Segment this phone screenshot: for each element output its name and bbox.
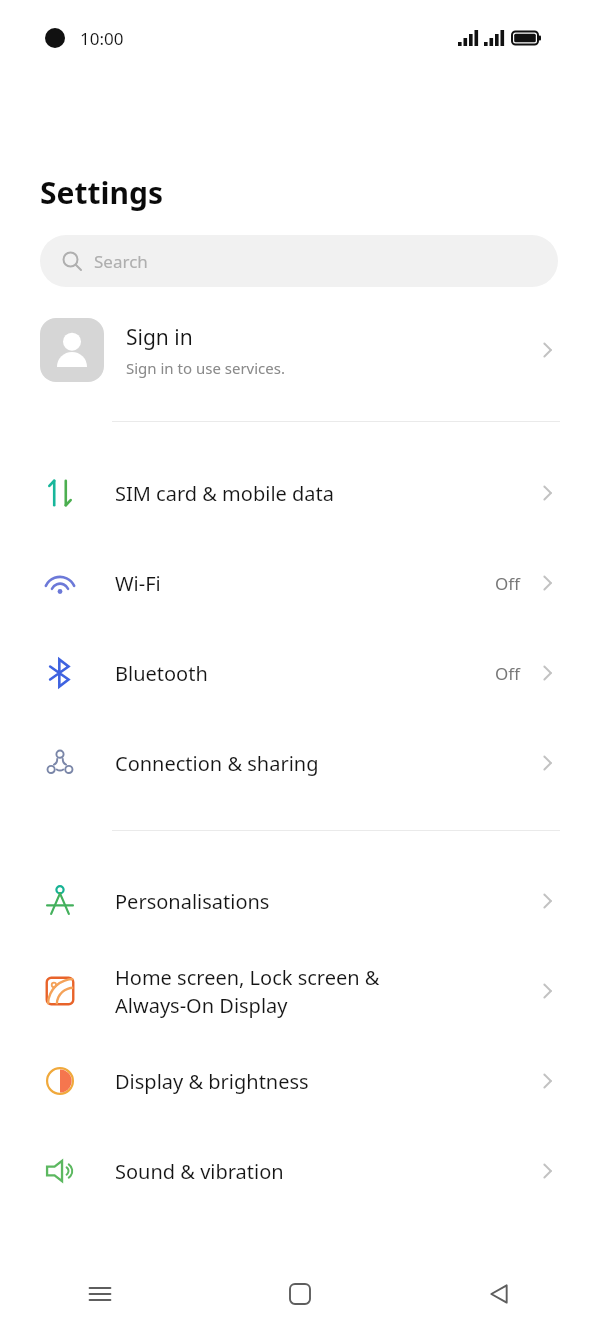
button[interactable]: Home — [200, 1258, 399, 1330]
staticText: Off — [495, 572, 520, 595]
staticText: Sign in to use services. — [126, 358, 285, 378]
button[interactable]: SIM card & mobile data — [0, 448, 598, 538]
staticText: Connection & sharing — [115, 750, 536, 777]
staticText: Home screen, Lock screen & Always-On Dis… — [115, 964, 536, 1019]
staticText: Wi-Fi — [115, 570, 495, 597]
button[interactable]: Recents — [0, 1258, 200, 1330]
staticText: 10:00 — [80, 27, 124, 50]
staticText: Bluetooth — [115, 660, 495, 687]
button[interactable]: Home screen, Lock screen & Always-On Dis… — [0, 946, 598, 1036]
button[interactable]: Search — [40, 235, 558, 287]
button[interactable]: Wi-Fi — [0, 538, 598, 628]
button[interactable]: Connection & sharing — [0, 718, 598, 808]
staticText: Settings — [40, 172, 163, 213]
staticText: SIM card & mobile data — [115, 480, 536, 507]
staticText: Sound & vibration — [115, 1158, 536, 1185]
button[interactable]: Personalisations — [0, 856, 598, 946]
button[interactable]: Sound & vibration — [0, 1126, 598, 1216]
button[interactable]: Bluetooth — [0, 628, 598, 718]
button[interactable]: Back — [399, 1258, 598, 1330]
staticText: Search — [94, 250, 148, 273]
staticText: Personalisations — [115, 888, 536, 915]
staticText: Sign in — [126, 323, 193, 352]
button[interactable]: Sign in — [0, 302, 598, 398]
staticText: Off — [495, 662, 520, 685]
button[interactable]: Display & brightness — [0, 1036, 598, 1126]
staticText: Display & brightness — [115, 1068, 536, 1095]
